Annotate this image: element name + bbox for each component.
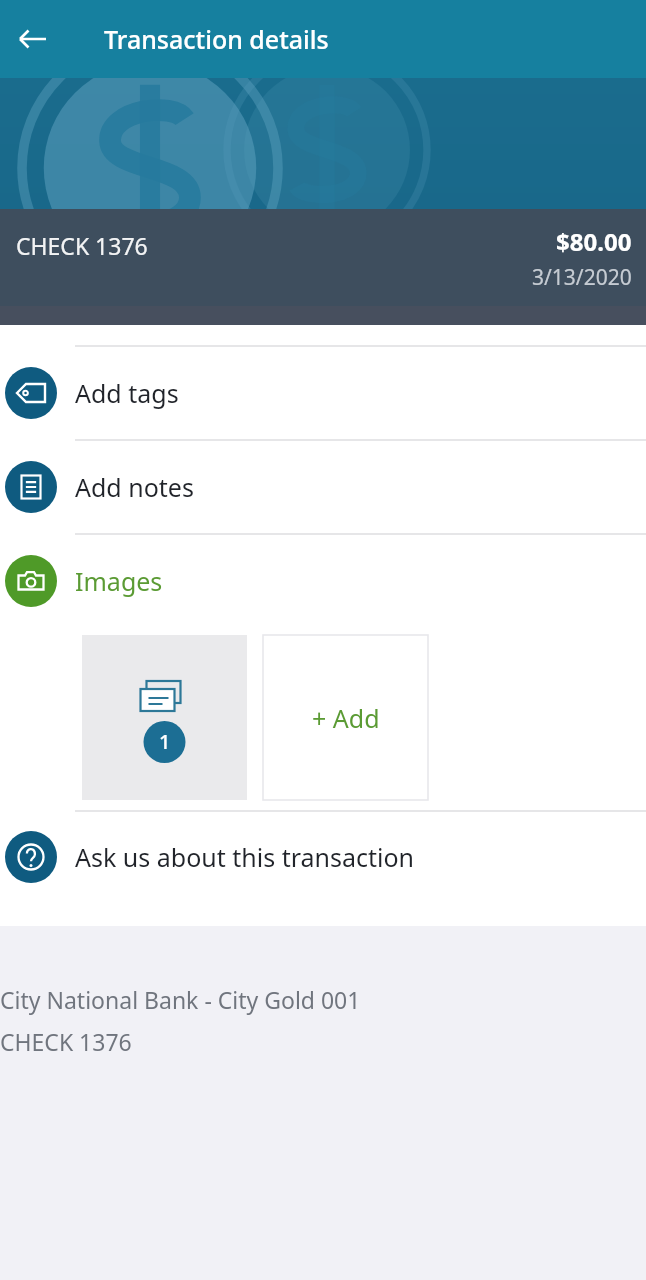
- staticText: Transaction details: [104, 22, 329, 56]
- staticText: Ask us about this transaction: [75, 840, 415, 874]
- staticText: CHECK 1376: [16, 230, 148, 261]
- staticText: $80.00: [556, 225, 632, 258]
- staticText: + Add: [312, 701, 380, 735]
- button[interactable]: Add notes: [0, 441, 646, 533]
- staticText: Add tags: [75, 376, 179, 410]
- button[interactable]: Back: [8, 14, 58, 64]
- staticText: 1: [159, 728, 171, 755]
- button[interactable]: Check image 1: [82, 635, 247, 800]
- staticText: CHECK 1376: [0, 1026, 132, 1057]
- button[interactable]: Images: [0, 535, 646, 627]
- button[interactable]: Ask us about this transaction: [0, 812, 646, 902]
- button[interactable]: Add tags: [0, 347, 646, 439]
- staticText: 3/13/2020: [532, 263, 632, 292]
- staticText: Add notes: [75, 470, 194, 504]
- staticText: Images: [75, 564, 163, 598]
- staticText: City National Bank - City Gold 001: [0, 984, 361, 1015]
- button[interactable]: + Add: [263, 635, 428, 800]
